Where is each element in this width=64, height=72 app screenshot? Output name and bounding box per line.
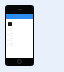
button[interactable]: Home bbox=[17, 59, 22, 64]
button[interactable] bbox=[7, 32, 34, 37]
button[interactable] bbox=[7, 37, 34, 42]
button[interactable] bbox=[7, 27, 34, 32]
button[interactable] bbox=[8, 22, 12, 26]
button[interactable] bbox=[7, 42, 34, 47]
